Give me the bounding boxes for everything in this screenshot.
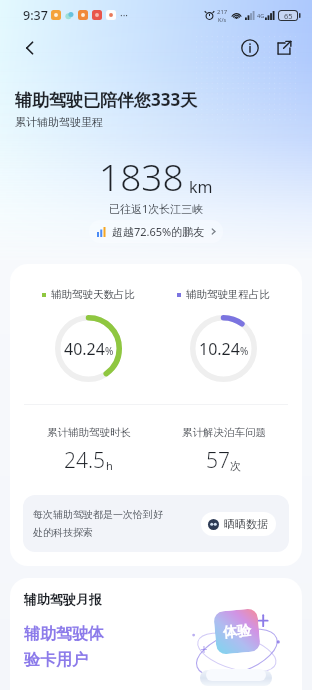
staticText: 9:37 [23, 7, 48, 24]
button[interactable]: 晒晒数据 [201, 512, 276, 536]
staticText: h [106, 458, 113, 473]
staticText: ··· [120, 8, 129, 22]
staticText: % [105, 344, 114, 358]
staticText: 辅助驾驶里程占比 [186, 288, 270, 301]
button[interactable]: Share [268, 32, 300, 64]
staticText: 1838 [99, 151, 184, 201]
staticText: 累计辅助驾驶时长 [47, 426, 131, 439]
staticText: 辅助驾驶月报 [24, 591, 102, 607]
button[interactable]: 超越72.65%的鹏友 [89, 220, 223, 243]
staticText: 已往返1次长江三峡 [109, 201, 204, 216]
staticText: K/s [218, 16, 227, 23]
staticText: 24.5 [64, 446, 106, 475]
staticText: 次 [230, 459, 241, 473]
staticText: 57 [206, 446, 230, 475]
button[interactable]: Back [14, 32, 46, 64]
staticText: 每次辅助驾驶都是一次恰到好处的科技探索 [33, 508, 167, 539]
staticText: 40.24 [64, 338, 105, 360]
staticText: 晒晒数据 [224, 517, 268, 531]
staticText: 超越72.65%的鹏友 [112, 224, 205, 239]
staticText: 10.24 [199, 338, 240, 360]
staticText: km [189, 176, 213, 198]
staticText: 辅助驾驶天数占比 [51, 288, 135, 301]
button[interactable]: 辅助驾驶月报 [10, 578, 302, 690]
staticText: 辅助驾驶体 验卡用户 [24, 624, 104, 669]
staticText: 217 [217, 8, 228, 16]
staticText: % [240, 344, 249, 358]
staticText: 65 [284, 11, 293, 20]
staticText: 累计辅助驾驶里程 [15, 115, 103, 129]
staticText: 4G [257, 12, 265, 19]
button[interactable]: Info [234, 32, 266, 64]
staticText: 体验 [222, 622, 252, 642]
staticText: 辅助驾驶已陪伴您333天 [15, 88, 198, 111]
staticText: 累计解决泊车问题 [182, 426, 266, 439]
